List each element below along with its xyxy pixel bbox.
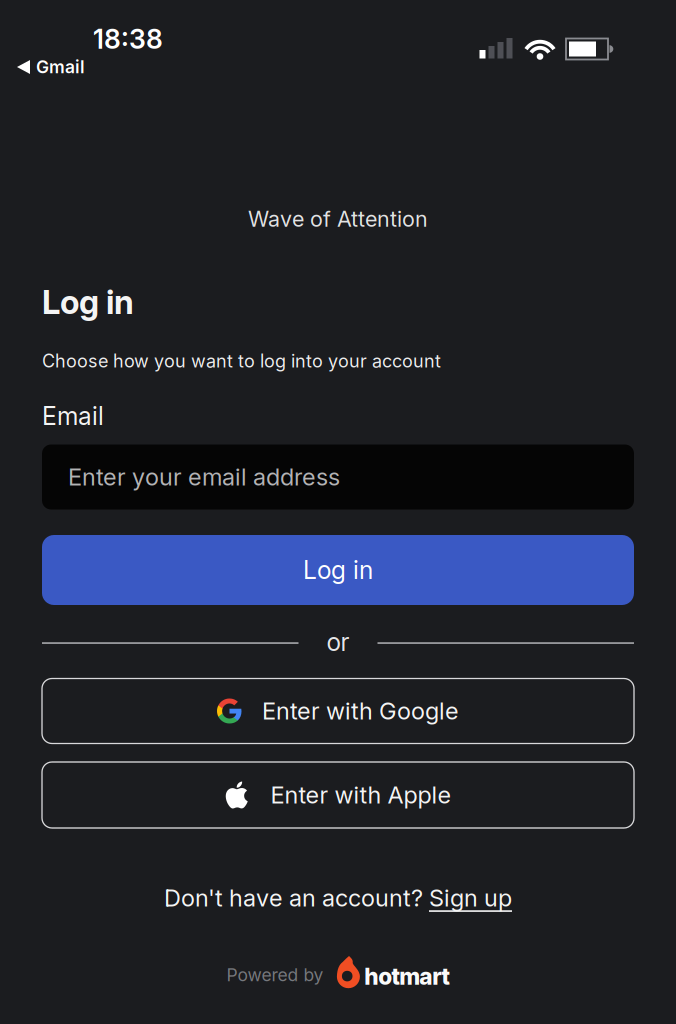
staticText: hotmart [364,963,449,990]
staticText: Log in [303,555,373,585]
staticText: Log in [42,282,134,322]
staticText: 18:38 [93,23,163,55]
staticText: Choose how you want to log into your acc… [42,350,441,372]
staticText: Gmail [36,56,85,77]
button[interactable]: Enter with Google [42,678,634,743]
button[interactable]: Sign up [429,884,512,912]
staticText: Enter with Google [262,697,459,725]
staticText: or [326,627,349,657]
button[interactable]: Enter your email address [42,444,634,509]
staticText: Enter with Apple [270,781,451,809]
button[interactable]: Log in [42,535,634,605]
staticText: Sign up [429,884,512,912]
staticText: Don't have an account? [164,884,429,912]
staticText: Powered by [226,964,323,985]
button[interactable]: Back to Gmail [17,56,85,77]
staticText: Enter your email address [68,463,340,491]
staticText: Email [42,401,104,431]
staticText: Wave of Attention [248,206,428,232]
button[interactable]: Enter with Apple [42,762,634,828]
